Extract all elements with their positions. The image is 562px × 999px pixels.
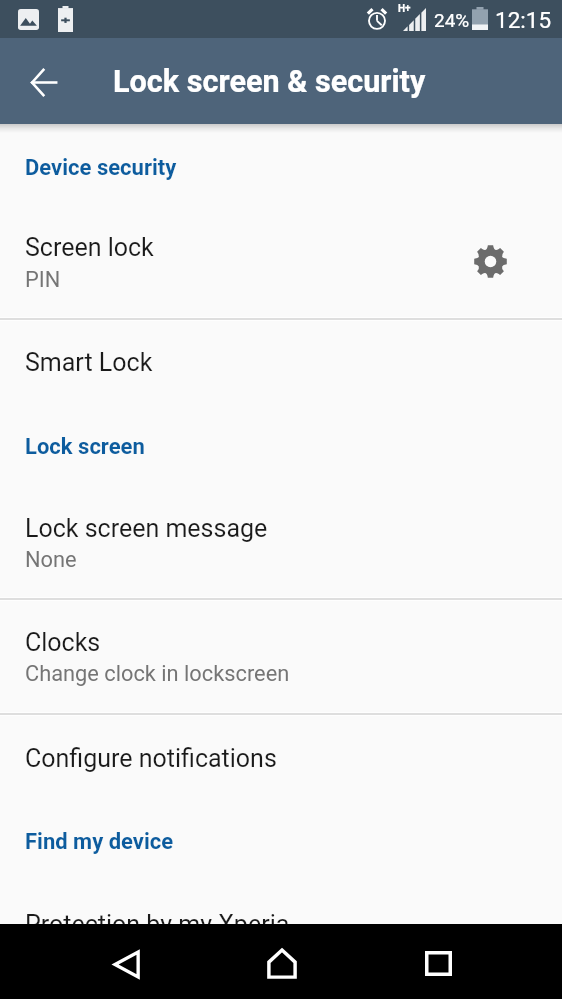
button[interactable]: Home [244,926,320,999]
staticText: Lock screen & security [113,64,426,100]
button[interactable]: Clocks [0,599,562,714]
staticText: Find my device [25,829,174,855]
button[interactable]: Smart Lock [0,319,562,400]
button[interactable]: Protection by my Xperia [0,881,562,925]
button[interactable]: Lock screen message [0,485,562,599]
staticText: Lock screen message [25,514,268,543]
staticText: H+ [398,3,411,15]
staticText: Protection by my Xperia [25,910,290,939]
staticText: PIN [25,267,61,293]
staticText: 24% [434,9,470,31]
button[interactable]: Recent apps [400,926,476,999]
staticText: Change clock in lockscreen [25,661,290,687]
staticText: Screen lock [25,233,154,262]
staticText: Clocks [25,628,101,657]
staticText: Configure notifications [25,744,277,773]
staticText: Device security [25,155,177,181]
button[interactable]: Screen lock settings [466,237,514,285]
staticText: Lock screen [25,434,145,460]
button[interactable]: Navigate up [20,57,68,105]
staticText: Smart Lock [25,348,153,377]
button[interactable]: Configure notifications [0,714,562,796]
button[interactable]: Screen lock [0,204,562,319]
staticText: None [25,547,77,573]
button[interactable]: Back [88,927,164,999]
staticText: 12:15 [495,7,552,33]
